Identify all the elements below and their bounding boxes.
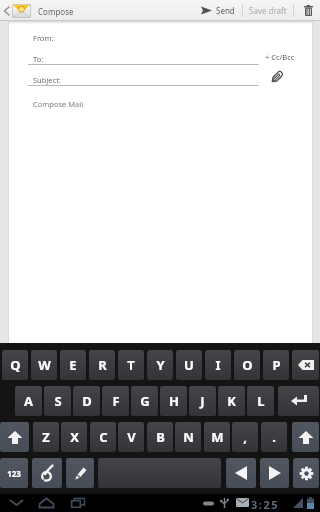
- staticText: V: [127, 428, 136, 446]
- button[interactable]: L: [247, 386, 274, 416]
- button[interactable]: [292, 350, 319, 380]
- button[interactable]: [66, 458, 94, 488]
- button[interactable]: Q: [2, 350, 28, 380]
- button[interactable]: Y: [147, 350, 173, 380]
- button[interactable]: A: [15, 386, 42, 416]
- staticText: Compose: [38, 6, 74, 17]
- button[interactable]: V: [118, 422, 144, 452]
- button[interactable]: [293, 458, 319, 488]
- staticText: Compose Mail: [33, 99, 84, 109]
- staticText: Q: [10, 356, 21, 374]
- button[interactable]: [267, 67, 287, 87]
- staticText: A: [24, 392, 33, 410]
- button[interactable]: [226, 458, 256, 488]
- staticText: Send: [216, 5, 235, 16]
- staticText: D: [82, 392, 92, 410]
- button[interactable]: [260, 458, 289, 488]
- button[interactable]: ,: [232, 422, 258, 452]
- staticText: E: [69, 356, 77, 374]
- staticText: F: [112, 392, 120, 410]
- button[interactable]: Z: [33, 422, 59, 452]
- staticText: Save draft: [249, 5, 287, 16]
- staticText: Z: [42, 428, 50, 446]
- staticText: Subject:: [33, 75, 61, 85]
- button[interactable]: R: [89, 350, 115, 380]
- staticText: L: [257, 392, 265, 410]
- staticText: K: [227, 392, 236, 410]
- staticText: ,: [243, 428, 247, 446]
- button[interactable]: [4, 494, 28, 512]
- button[interactable]: [8, 53, 313, 65]
- staticText: S: [54, 392, 62, 410]
- button[interactable]: [0, 422, 29, 452]
- staticText: C: [99, 428, 108, 446]
- staticText: G: [140, 392, 150, 410]
- button[interactable]: .: [261, 422, 287, 452]
- staticText: X: [70, 428, 79, 446]
- button[interactable]: O: [234, 350, 260, 380]
- staticText: H: [169, 392, 179, 410]
- staticText: Y: [156, 356, 165, 374]
- staticText: To:: [33, 54, 44, 64]
- button[interactable]: [278, 386, 319, 416]
- button[interactable]: [292, 422, 319, 452]
- button[interactable]: + Cc/Bcc: [265, 52, 295, 62]
- button[interactable]: D: [73, 386, 100, 416]
- staticText: From:: [33, 33, 54, 43]
- button[interactable]: [34, 494, 58, 512]
- button[interactable]: E: [60, 350, 86, 380]
- button[interactable]: 123: [0, 458, 28, 488]
- button[interactable]: X: [61, 422, 87, 452]
- staticText: T: [127, 356, 135, 374]
- button[interactable]: N: [175, 422, 201, 452]
- staticText: R: [98, 356, 107, 374]
- staticText: I: [215, 356, 221, 374]
- staticText: U: [184, 356, 194, 374]
- button[interactable]: Send: [201, 0, 235, 21]
- staticText: 123: [7, 468, 21, 479]
- staticText: 3:25: [251, 497, 279, 512]
- button[interactable]: I: [205, 350, 231, 380]
- button[interactable]: U: [176, 350, 202, 380]
- staticText: + Cc/Bcc: [265, 52, 295, 62]
- button[interactable]: S: [44, 386, 71, 416]
- staticText: B: [156, 428, 165, 446]
- staticText: W: [38, 356, 51, 374]
- button[interactable]: J: [189, 386, 216, 416]
- button[interactable]: M: [204, 422, 230, 452]
- button[interactable]: K: [218, 386, 245, 416]
- button[interactable]: Save draft: [249, 0, 287, 21]
- staticText: M: [211, 428, 224, 446]
- button[interactable]: C: [90, 422, 116, 452]
- button[interactable]: G: [131, 386, 158, 416]
- staticText: .: [272, 428, 276, 446]
- staticText: O: [242, 356, 253, 374]
- staticText: P: [272, 356, 281, 374]
- button[interactable]: [66, 494, 90, 512]
- button[interactable]: [32, 458, 62, 488]
- button[interactable]: W: [31, 350, 57, 380]
- button[interactable]: H: [160, 386, 187, 416]
- button[interactable]: B: [147, 422, 173, 452]
- button[interactable]: [98, 458, 221, 488]
- button[interactable]: T: [118, 350, 144, 380]
- button[interactable]: P: [263, 350, 289, 380]
- button[interactable]: [300, 0, 316, 21]
- staticText: N: [183, 428, 194, 446]
- staticText: J: [200, 392, 205, 410]
- button[interactable]: F: [102, 386, 129, 416]
